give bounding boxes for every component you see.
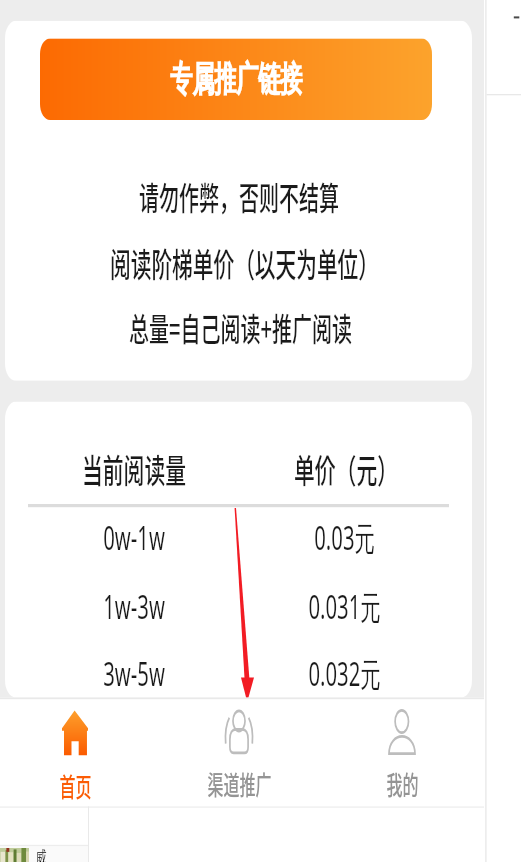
staticText: 威 <box>35 846 47 862</box>
button[interactable]: 首页 <box>15 698 135 806</box>
staticText: 首页 <box>59 766 92 803</box>
staticText: 渠道推广 <box>207 765 272 802</box>
staticText: 我的 <box>386 765 419 802</box>
button[interactable]: 渠道推广 <box>179 698 299 806</box>
staticText: 总量=自己阅读+推广阅读 <box>129 304 352 350</box>
staticText: 单价（元） <box>294 445 398 493</box>
staticText: 0w-1w <box>103 515 165 560</box>
staticText: 专属推广链接 <box>170 58 302 102</box>
button[interactable]: 我的 <box>342 698 462 806</box>
staticText: 阅读阶梯单价（以天为单位） <box>110 238 379 286</box>
staticText: 3w-5w <box>103 651 165 696</box>
staticText: 1w-3w <box>103 584 165 629</box>
button[interactable]: 专属推广链接 <box>40 38 432 120</box>
staticText: 请勿作弊，否则不结算 <box>139 173 339 219</box>
staticText: 当前阅读量 <box>82 445 186 493</box>
staticText: 0.031元 <box>308 584 381 629</box>
staticText: 0.03元 <box>314 515 375 560</box>
staticText: 0.032元 <box>308 651 381 696</box>
